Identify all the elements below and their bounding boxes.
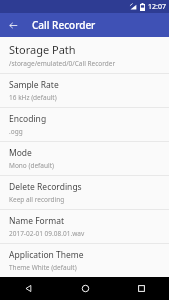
staticText: Mode [9, 147, 32, 159]
button[interactable]: Home [57, 277, 113, 300]
staticText: Theme White (default) [9, 263, 77, 272]
staticText: Keep all recording [9, 195, 65, 204]
staticText: 2017-02-01 09.08.01.wav [9, 229, 85, 238]
staticText: Application Theme [9, 249, 84, 261]
button[interactable]: Recents [113, 277, 169, 300]
button[interactable]: Storage Path [0, 37, 169, 73]
staticText: .ogg [9, 127, 23, 136]
button[interactable]: Delete Recordings [0, 175, 169, 209]
staticText: /storage/emulated/0/Call Recorder [9, 59, 116, 68]
button[interactable]: Application Theme [0, 243, 169, 277]
staticText: Call Recorder [32, 18, 96, 32]
button[interactable]: Mode [0, 141, 169, 175]
staticText: 12:07 [148, 2, 166, 12]
staticText: 16 kHz (default) [9, 93, 57, 102]
staticText: Encoding [9, 113, 47, 125]
button[interactable]: Back [6, 18, 20, 32]
staticText: Name Format [9, 215, 65, 227]
button[interactable]: Back [0, 277, 57, 300]
staticText: Mono (default) [9, 161, 54, 170]
button[interactable]: Name Format [0, 209, 169, 243]
button[interactable]: Encoding [0, 107, 169, 141]
button[interactable]: Sample Rate [0, 73, 169, 107]
staticText: Delete Recordings [9, 181, 82, 193]
staticText: Sample Rate [9, 79, 59, 91]
staticText: Storage Path [9, 42, 76, 57]
